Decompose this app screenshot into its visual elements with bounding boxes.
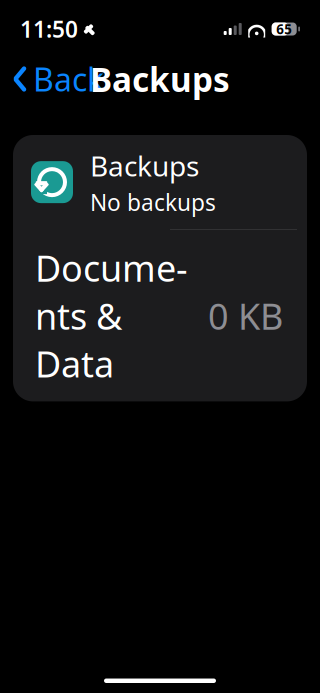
staticText: Backups bbox=[90, 57, 230, 101]
staticText: No backups bbox=[90, 187, 216, 217]
button[interactable]: Documents & Data bbox=[23, 230, 297, 401]
staticText: Backups bbox=[90, 147, 199, 184]
staticText: 65 bbox=[276, 20, 292, 38]
staticText: Documents & Data bbox=[35, 244, 188, 387]
staticText: 11:50 bbox=[20, 14, 78, 44]
button[interactable]: Backups bbox=[23, 135, 297, 229]
button[interactable]: Back bbox=[8, 52, 108, 106]
staticText: Back bbox=[33, 58, 104, 100]
staticText: 0 KB bbox=[208, 292, 283, 340]
